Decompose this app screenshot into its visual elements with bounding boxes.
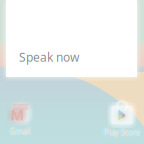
button[interactable]: Gmail <box>8 101 32 137</box>
staticText: Gmail <box>9 126 30 137</box>
staticText: Speak now <box>19 49 79 65</box>
button[interactable]: Play Store <box>109 102 135 138</box>
staticText: Play Store <box>103 127 140 138</box>
staticText: M <box>10 105 24 124</box>
